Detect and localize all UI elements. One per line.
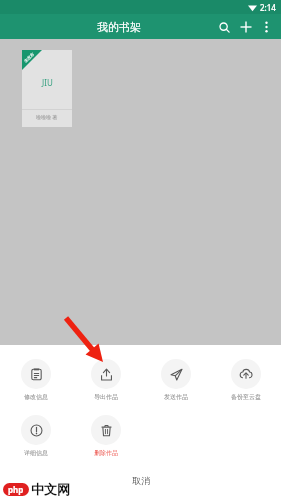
staticText: 我的书架: [97, 20, 141, 34]
button[interactable]: JIU: [22, 50, 72, 127]
button[interactable]: More options: [257, 18, 275, 36]
staticText: 取消: [132, 475, 150, 486]
button[interactable]: 导出作品: [71, 355, 141, 405]
button[interactable]: Add: [235, 16, 257, 38]
button[interactable]: 删除作品: [71, 411, 141, 461]
staticText: 备份至云盘: [231, 393, 261, 401]
staticText: 2:14: [260, 2, 276, 13]
button[interactable]: 发送作品: [141, 355, 211, 405]
staticText: JIU: [42, 77, 53, 88]
staticText: 发送作品: [164, 393, 188, 401]
staticText: 中文网: [31, 481, 70, 497]
button[interactable]: 备份至云盘: [211, 355, 281, 405]
button[interactable]: 修改信息: [0, 355, 71, 405]
staticText: php: [8, 484, 24, 495]
button[interactable]: 详细信息: [0, 411, 71, 461]
staticText: 详细信息: [24, 449, 48, 457]
staticText: 删除作品: [94, 449, 118, 457]
staticText: 啦啦啦 著: [36, 114, 58, 121]
button[interactable]: Search: [213, 16, 235, 38]
button[interactable]: 取消: [0, 465, 281, 495]
staticText: 导出作品: [94, 393, 118, 401]
staticText: 未发布: [23, 51, 35, 63]
staticText: 修改信息: [24, 393, 48, 401]
